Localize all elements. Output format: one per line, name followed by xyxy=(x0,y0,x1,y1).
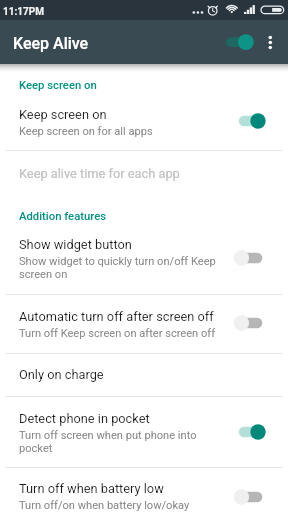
staticText: Show widget button xyxy=(19,237,235,252)
button[interactable] xyxy=(0,355,288,395)
staticText: Turn off Keep screen on after screen off xyxy=(19,327,229,340)
staticText: Show widget to quickly turn on/off Keep … xyxy=(19,255,229,281)
staticText: Only on charge xyxy=(19,367,235,382)
button[interactable] xyxy=(0,469,288,512)
staticText: Turn off/on when battery low/okay xyxy=(19,499,229,512)
staticText: Keep screen on xyxy=(19,79,97,92)
staticText: Turn off screen when put phone into pock… xyxy=(19,429,229,455)
staticText: Keep alive time for each app xyxy=(19,166,235,181)
button[interactable] xyxy=(0,101,288,149)
staticText: Keep Alive xyxy=(13,34,89,53)
button[interactable] xyxy=(0,152,288,197)
button[interactable] xyxy=(0,296,288,352)
staticText: Keep screen on for all apps xyxy=(19,125,229,138)
staticText: Turn off when battery low xyxy=(19,481,235,496)
button[interactable]: More options xyxy=(258,28,282,52)
staticText: Addition features xyxy=(19,210,107,223)
staticText: Detect phone in pocket xyxy=(19,411,235,426)
button[interactable] xyxy=(0,230,288,293)
staticText: 11:17PM xyxy=(3,6,44,18)
button[interactable] xyxy=(0,398,288,466)
button[interactable]: Keep alive master switch xyxy=(219,30,255,54)
staticText: Keep screen on xyxy=(19,107,235,122)
staticText: Automatic turn off after screen off xyxy=(19,309,235,324)
